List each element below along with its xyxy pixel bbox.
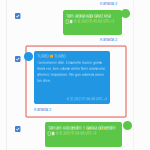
staticText: 6.12.2021 17:45:02 UTC +3 (74, 20, 114, 23)
button[interactable]: Tam aldıda kapı dayız kısa (63, 10, 122, 35)
staticText: şifleriniz terpataları. Her gün adam mı … (37, 73, 104, 76)
button[interactable]: TURBO (34, 51, 110, 104)
staticText: Tam aldıda kapı dayız kısa (66, 13, 111, 18)
button[interactable]: Tamam kod geldim 1 dakika gönderdim (45, 122, 122, 147)
staticText: Aramı var, ben ustume alirim. Beni aramı… (37, 67, 106, 70)
staticText: 6.12.2021 17:54:08 UTC +3 (56, 132, 96, 135)
button[interactable]: Select message (15, 13, 20, 19)
button[interactable]: Select message (15, 126, 20, 132)
staticText: Tarım alanını dibi. Ensanelle tüürye gör… (37, 61, 103, 64)
staticText: lan diye. (37, 79, 51, 82)
button[interactable]: Kanalda 2 (34, 107, 51, 112)
staticText: Kanalda 2 (100, 1, 117, 6)
button[interactable]: Kanalda 2 (100, 37, 117, 42)
button[interactable]: Kanalda 2 (100, 1, 117, 6)
button[interactable]: Select message (15, 56, 20, 62)
staticText: Kanalda 2 (100, 37, 117, 42)
staticText: TURBO (37, 54, 49, 58)
staticText: TURBO (54, 54, 66, 58)
staticText: Tamam kod geldim 1 dakika gönderdim (48, 125, 116, 130)
staticText: 6.12.2021 17:56:49 UTC +3 (67, 97, 107, 101)
staticText: Kanalda 2 (34, 107, 51, 112)
